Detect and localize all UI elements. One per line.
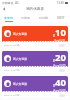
button[interactable]: 新人专享券 — [2, 51, 68, 73]
button[interactable]: Back — [0, 5, 8, 13]
button[interactable]: NEXT — [52, 13, 70, 22]
button[interactable]: 新人专享券 — [2, 26, 68, 48]
staticText: 已过期 — [39, 16, 48, 20]
button[interactable]: Details — [59, 44, 65, 47]
staticText: 我的优惠券 — [26, 7, 44, 12]
staticText: 中国移动 — [2, 1, 14, 5]
staticText: 2024.12.31到期 — [4, 69, 20, 72]
staticText: NEXT — [57, 16, 65, 20]
staticText: 满99元可用 — [54, 39, 66, 41]
button[interactable]: Details — [59, 69, 65, 72]
staticText: 20 — [55, 51, 66, 64]
staticText: 2024.12.31到期 — [4, 94, 20, 97]
staticText: 新人专享券 — [13, 82, 27, 86]
button[interactable]: 未使用 — [0, 13, 17, 22]
staticText: 已使用 — [21, 16, 30, 20]
button[interactable]: 已使用 — [17, 13, 34, 22]
staticText: 10 — [55, 26, 66, 39]
staticText: 未使用 — [4, 16, 13, 20]
button[interactable]: 新人专享券 — [2, 76, 68, 98]
button[interactable]: 已过期 — [34, 13, 52, 22]
staticText: 4G — [15, 1, 19, 5]
staticText: 2024.12.31到期 — [4, 44, 20, 47]
staticText: 满199元可用 — [53, 64, 66, 66]
staticText: ¥ — [53, 83, 55, 88]
staticText: 新人专享券 — [13, 57, 27, 61]
staticText: ¥ — [53, 33, 55, 38]
staticText: ¥ — [53, 58, 55, 63]
staticText: 新人专享券 — [13, 32, 27, 36]
button[interactable]: Details — [59, 94, 65, 97]
staticText: 12:30 — [57, 1, 64, 5]
staticText: 满399元可用 — [53, 89, 66, 91]
staticText: 40 — [55, 76, 66, 89]
